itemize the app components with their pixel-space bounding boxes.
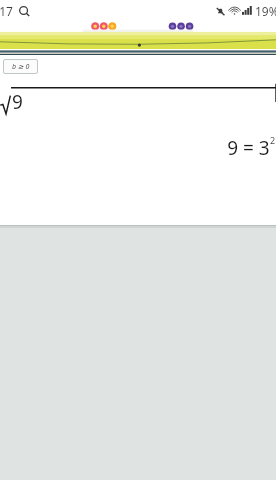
staticText: 9 [12,89,23,115]
staticText: 19% [255,3,276,19]
staticText: b ≥ 0 [12,62,30,72]
staticText: 2 [270,134,276,146]
staticText: :17 [0,3,13,19]
button[interactable]: Search [18,5,31,18]
button[interactable]: b ≥ 0 [3,59,38,74]
staticText: 9 = 3 [227,135,270,161]
